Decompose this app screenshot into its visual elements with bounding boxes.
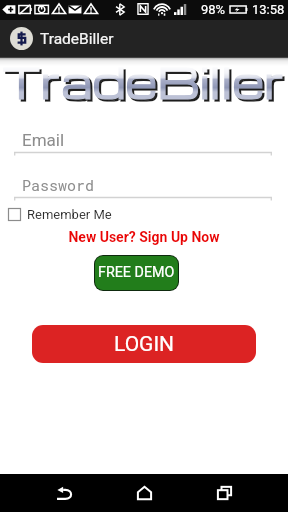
- staticText: TradeBiller: [2, 51, 285, 110]
- button[interactable]: LOGIN: [32, 325, 256, 363]
- button[interactable]: Home: [120, 474, 168, 512]
- staticText: LOGIN: [114, 332, 175, 357]
- staticText: TradeBiller: [4, 53, 287, 112]
- staticText: 98%: [201, 2, 226, 17]
- button[interactable]: Remember Me: [8, 207, 112, 222]
- button[interactable]: New User? Sign Up Now: [0, 229, 288, 245]
- staticText: 13:58: [252, 2, 285, 17]
- staticText: Remember Me: [27, 207, 112, 222]
- button[interactable]: Email: [14, 130, 272, 156]
- staticText: TradeBiller: [40, 30, 114, 48]
- staticText: TradeBiller: [4, 53, 287, 112]
- button[interactable]: Recent apps: [200, 474, 248, 512]
- button[interactable]: Back: [40, 474, 88, 512]
- staticText: TradeBiller: [2, 51, 285, 110]
- staticText: FREE DEMO: [98, 264, 175, 281]
- staticText: Email: [22, 130, 65, 150]
- button[interactable]: FREE DEMO: [95, 256, 178, 290]
- button[interactable]: Password: [14, 175, 272, 201]
- staticText: Password: [22, 175, 95, 195]
